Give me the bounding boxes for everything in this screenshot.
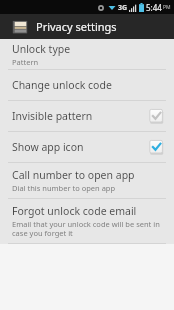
- staticText: Call number to open app: [12, 168, 135, 182]
- button[interactable]: Call number to open app: [0, 163, 174, 198]
- button[interactable]: Forgot unlock code email: [0, 199, 174, 243]
- staticText: Privacy settings: [36, 19, 117, 34]
- staticText: Invisible pattern: [12, 109, 93, 123]
- staticText: Pattern: [12, 57, 39, 67]
- button[interactable]: Change unlock code: [0, 70, 174, 100]
- button[interactable]: Invisible pattern: [0, 101, 174, 131]
- button[interactable]: Unlock type: [0, 39, 174, 69]
- staticText: Forgot unlock code email: [12, 204, 137, 218]
- button[interactable]: Disabled toggle: [147, 107, 165, 125]
- staticText: Show app icon: [12, 140, 84, 154]
- staticText: Email that your unlock code will be sent…: [12, 219, 165, 238]
- staticText: 5:44: [146, 2, 162, 13]
- staticText: Dial this number to open app: [12, 183, 116, 193]
- button[interactable]: Show app icon: [0, 132, 174, 162]
- staticText: PM: [163, 4, 171, 11]
- other: App icon: [12, 19, 28, 35]
- staticText: 3G: [118, 3, 128, 13]
- button[interactable]: Enabled toggle: [147, 138, 165, 156]
- staticText: Unlock type: [12, 42, 71, 56]
- button[interactable]: App icon: [0, 14, 174, 39]
- staticText: Change unlock code: [12, 78, 112, 92]
